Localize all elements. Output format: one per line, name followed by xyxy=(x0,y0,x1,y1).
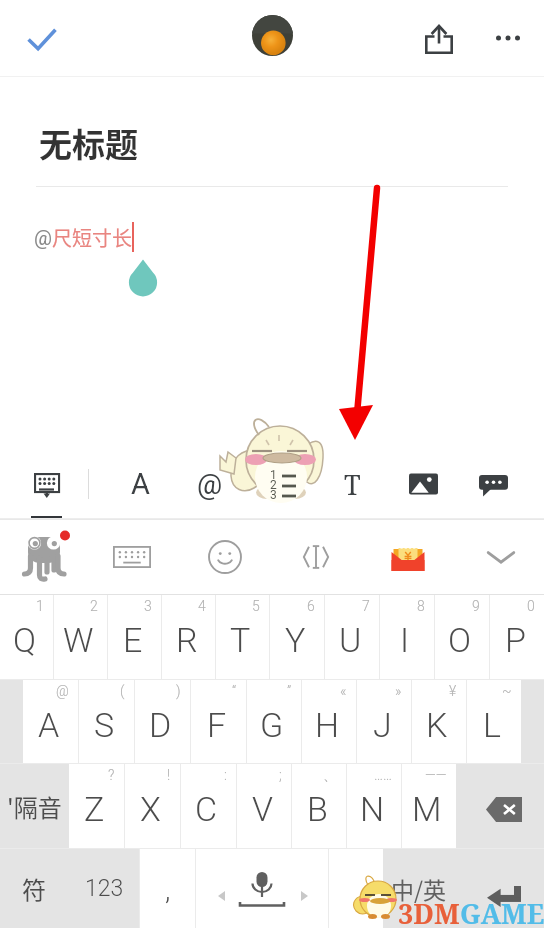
staticText: , xyxy=(165,874,171,907)
staticText: @ xyxy=(197,468,223,501)
button[interactable]: 6 xyxy=(270,595,324,679)
button[interactable]: Enter xyxy=(455,849,544,928)
staticText: —— xyxy=(425,767,447,783)
button[interactable]: Comment xyxy=(458,449,528,519)
staticText: H xyxy=(315,705,340,745)
button[interactable]: 0 xyxy=(490,595,544,679)
staticText: @ xyxy=(34,226,52,249)
button[interactable]: Space xyxy=(196,849,328,928)
staticText: Q xyxy=(13,620,37,660)
staticText: 无标题 xyxy=(39,119,138,167)
button[interactable]: Keyboard layout xyxy=(89,519,175,594)
staticText: F xyxy=(207,705,227,745)
button[interactable]: : xyxy=(181,764,236,848)
button[interactable]: » xyxy=(357,680,411,763)
button[interactable]: Done xyxy=(0,0,84,77)
button[interactable]: Mention xyxy=(175,449,245,519)
staticText: N xyxy=(360,789,385,829)
button[interactable]: Hide keyboard xyxy=(0,449,88,519)
staticText: C xyxy=(195,789,218,829)
button[interactable]: 2 xyxy=(54,595,107,679)
button[interactable]: Insert image xyxy=(388,449,458,519)
staticText: 7 xyxy=(362,598,370,614)
staticText: 8 xyxy=(417,598,425,614)
button[interactable]: Emoji xyxy=(329,849,383,928)
button[interactable]: Ordered list xyxy=(246,449,316,519)
staticText: 、 xyxy=(323,767,337,785)
button[interactable]: « xyxy=(302,680,356,763)
button[interactable]: ” xyxy=(247,680,301,763)
button[interactable]: @ xyxy=(23,680,78,763)
staticText: U xyxy=(339,620,362,660)
staticText: A xyxy=(38,705,60,745)
staticText: Y xyxy=(285,620,306,660)
button[interactable]: Text style xyxy=(317,449,387,519)
staticText: W xyxy=(63,620,94,660)
button[interactable]: Edit text xyxy=(273,519,359,594)
staticText: G xyxy=(260,705,284,745)
staticText: ~ xyxy=(502,683,512,699)
staticText: P xyxy=(505,620,526,660)
button[interactable]: Share xyxy=(408,0,470,77)
button[interactable]: 8 xyxy=(380,595,434,679)
button[interactable]: 3 xyxy=(108,595,161,679)
staticText: V xyxy=(252,789,273,829)
button[interactable]: …… xyxy=(347,764,401,848)
staticText: 123 xyxy=(85,875,124,902)
staticText: D xyxy=(149,705,172,745)
staticText: 6 xyxy=(307,598,315,614)
staticText: O xyxy=(448,620,472,660)
staticText: ¥ xyxy=(449,683,457,699)
button[interactable]: ! xyxy=(125,764,180,848)
button[interactable]: 1 xyxy=(0,595,53,679)
staticText: 2 xyxy=(90,598,98,614)
button[interactable]: Profile picture xyxy=(252,15,293,56)
staticText: : xyxy=(224,767,227,783)
button[interactable]: More options xyxy=(478,0,538,77)
staticText: @ xyxy=(56,683,69,699)
button[interactable]: ? xyxy=(69,764,124,848)
staticText: GAME xyxy=(460,895,544,928)
staticText: 5 xyxy=(252,598,260,614)
staticText: I xyxy=(400,620,410,660)
button[interactable]: 符 xyxy=(0,849,68,928)
button[interactable]: —— xyxy=(402,764,456,848)
button[interactable]: Input method settings xyxy=(0,519,86,594)
staticText: ) xyxy=(176,683,181,699)
button[interactable]: 中/英 xyxy=(383,849,454,928)
button[interactable]: Hide keyboard xyxy=(458,519,544,594)
staticText: 9 xyxy=(472,598,480,614)
button[interactable]: ; xyxy=(237,764,291,848)
button[interactable]: ¥ xyxy=(412,680,466,763)
staticText: E xyxy=(123,620,143,660)
staticText: 3DM xyxy=(398,895,460,928)
button[interactable]: 、 xyxy=(292,764,346,848)
button[interactable]: '隔音 xyxy=(0,764,68,848)
button[interactable]: ) xyxy=(135,680,190,763)
button[interactable]: 7 xyxy=(325,595,379,679)
staticText: 3 xyxy=(144,598,152,614)
button[interactable]: Font xyxy=(105,449,175,519)
staticText: » xyxy=(395,683,402,699)
button[interactable]: ~ xyxy=(467,680,521,763)
button[interactable]: 5 xyxy=(216,595,269,679)
staticText: « xyxy=(340,683,347,699)
button[interactable]: 9 xyxy=(435,595,489,679)
button[interactable]: Red packet xyxy=(365,519,451,594)
staticText: …… xyxy=(374,767,392,783)
staticText: ! xyxy=(167,767,171,783)
staticText: A xyxy=(131,467,150,501)
button[interactable]: ( xyxy=(79,680,134,763)
button[interactable]: 4 xyxy=(162,595,215,679)
button[interactable]: “ xyxy=(191,680,246,763)
staticText: ; xyxy=(279,767,282,783)
button[interactable]: , xyxy=(140,849,195,928)
button[interactable]: Backspace xyxy=(457,764,544,848)
staticText: T xyxy=(344,466,361,503)
staticText: 1 2 3 xyxy=(270,468,277,502)
staticText: S xyxy=(94,705,115,745)
button[interactable]: 123 xyxy=(69,849,139,928)
button[interactable]: Emoji xyxy=(182,519,268,594)
staticText: ( xyxy=(120,683,125,699)
staticText: 0 xyxy=(527,598,535,614)
